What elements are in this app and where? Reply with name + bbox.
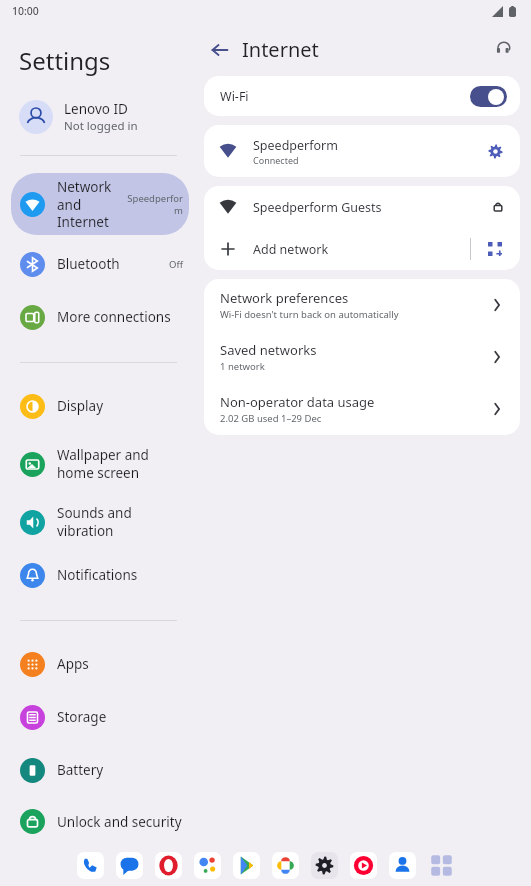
button[interactable]: Lenovo ID (0, 93, 200, 141)
button[interactable]: Messages (115, 851, 144, 880)
staticText: Battery (57, 761, 182, 779)
staticText: Settings (19, 44, 111, 77)
button[interactable]: Photos (271, 851, 300, 880)
button[interactable]: Support (488, 33, 520, 65)
button[interactable]: Storage (11, 693, 189, 741)
staticText: Lenovo ID (64, 100, 128, 118)
button[interactable]: Network and Internet (11, 173, 189, 235)
button[interactable]: Wi-Fi (204, 76, 520, 116)
button[interactable]: Back (204, 32, 323, 67)
button[interactable]: Saved networks (204, 331, 520, 383)
staticText: Non-operator data usage (220, 393, 375, 411)
button[interactable]: All apps (427, 851, 456, 880)
staticText: Add network (253, 241, 329, 258)
staticText: Wallpaper and home screen (57, 446, 182, 482)
button[interactable]: More connections (11, 293, 189, 341)
button[interactable]: Apps (11, 640, 189, 688)
staticText: Apps (57, 655, 182, 673)
button[interactable]: Opera (154, 851, 183, 880)
staticText: More connections (57, 308, 182, 326)
staticText: Saved networks (220, 341, 317, 359)
staticText: Wi-Fi doesn't turn back on automatically (220, 308, 399, 321)
staticText: 1 network (220, 360, 265, 373)
staticText: Network preferences (220, 289, 349, 307)
button[interactable]: Contacts (388, 851, 417, 880)
staticText: Not logged in (64, 118, 138, 134)
button[interactable]: Notifications (11, 551, 189, 599)
staticText: Notifications (57, 566, 182, 584)
button[interactable]: Bluetooth (11, 240, 189, 288)
staticText: Speedperform (253, 137, 338, 154)
staticText: Off (143, 258, 183, 271)
staticText: Bluetooth (57, 255, 143, 273)
button[interactable]: YouTube Music (349, 851, 378, 880)
button[interactable]: Speedperform (204, 125, 520, 177)
button[interactable]: Display (11, 382, 189, 430)
staticText: Internet (242, 36, 319, 63)
staticText: Storage (57, 708, 182, 726)
button[interactable]: Wallpaper and home screen (11, 435, 189, 493)
button[interactable]: Sounds and vibration (11, 498, 189, 546)
button[interactable]: Add network (204, 228, 520, 270)
staticText: Display (57, 397, 182, 415)
staticText: Speedperform (127, 192, 183, 217)
button[interactable]: Battery (11, 746, 189, 794)
button[interactable]: Assistant (193, 851, 222, 880)
button[interactable]: Unlock and security (11, 799, 189, 844)
button[interactable]: Network preferences (204, 279, 520, 331)
staticText: 10:00 (12, 4, 39, 18)
staticText: Speedperform Guests (253, 199, 382, 216)
staticText: Connected (253, 154, 299, 166)
button[interactable]: Scan QR code (484, 238, 506, 260)
staticText: Wi-Fi (220, 88, 249, 105)
staticText: Unlock and security (57, 813, 183, 831)
button[interactable]: Network settings (481, 137, 509, 165)
staticText: 2.02 GB used 1–29 Dec (220, 412, 322, 425)
staticText: Network and Internet (57, 178, 115, 231)
button[interactable]: Play Store (232, 851, 261, 880)
button[interactable]: Phone (76, 851, 105, 880)
staticText: Sounds and vibration (57, 504, 183, 540)
button[interactable]: Non-operator data usage (204, 383, 520, 435)
button[interactable]: Speedperform Guests (204, 186, 520, 228)
other: Back (208, 38, 232, 62)
button[interactable]: Settings (310, 851, 339, 880)
